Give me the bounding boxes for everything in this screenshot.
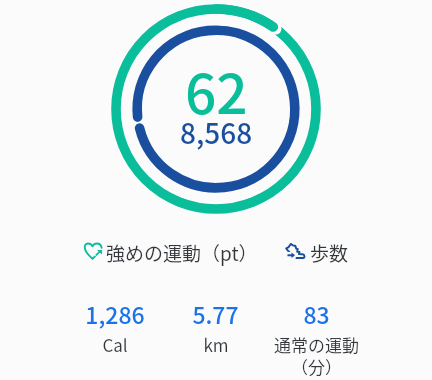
button[interactable]: 83 (266, 297, 367, 379)
staticText: 5.77 (192, 297, 239, 330)
other: Heart Points (84, 243, 102, 259)
staticText: 1,286 (85, 297, 145, 330)
button[interactable]: Steps (286, 239, 349, 267)
button[interactable]: 1,286 (65, 297, 165, 357)
staticText: 通常の運動 （分） (274, 332, 359, 379)
staticText: 歩数 (310, 239, 349, 267)
staticText: 62 (185, 50, 248, 130)
staticText: 83 (303, 297, 330, 330)
staticText: 強めの運動（pt） (106, 239, 258, 267)
staticText: 8,568 (180, 112, 253, 153)
other: Steps (286, 243, 305, 259)
button[interactable]: Heart Points (84, 239, 258, 267)
button[interactable]: 5.77 (165, 297, 266, 357)
staticText: Cal (102, 332, 128, 357)
staticText: km (203, 332, 229, 357)
